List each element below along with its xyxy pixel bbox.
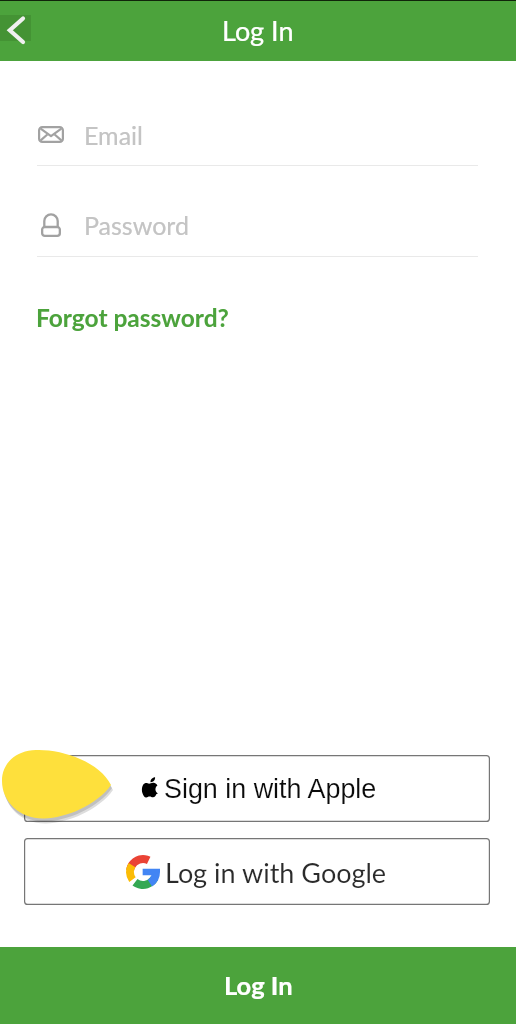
- staticText: Sign in with Apple: [164, 774, 377, 804]
- staticText: Log In: [224, 970, 293, 1001]
- staticText: Forgot password?: [36, 303, 229, 332]
- button[interactable]: Log In: [0, 947, 516, 1024]
- staticText: Log in with Google: [165, 856, 387, 888]
- staticText: Password: [84, 210, 189, 240]
- button[interactable]: Forgot password?: [36, 303, 229, 332]
- staticText: Email: [84, 120, 143, 150]
- button[interactable]: Back: [0, 0, 48, 61]
- staticText: Log In: [222, 14, 294, 46]
- button[interactable]: Password: [37, 203, 478, 257]
- button[interactable]: Log in with Google: [24, 838, 490, 905]
- button[interactable]: Email: [37, 112, 478, 166]
- button[interactable]: Sign in with Apple: [24, 755, 490, 822]
